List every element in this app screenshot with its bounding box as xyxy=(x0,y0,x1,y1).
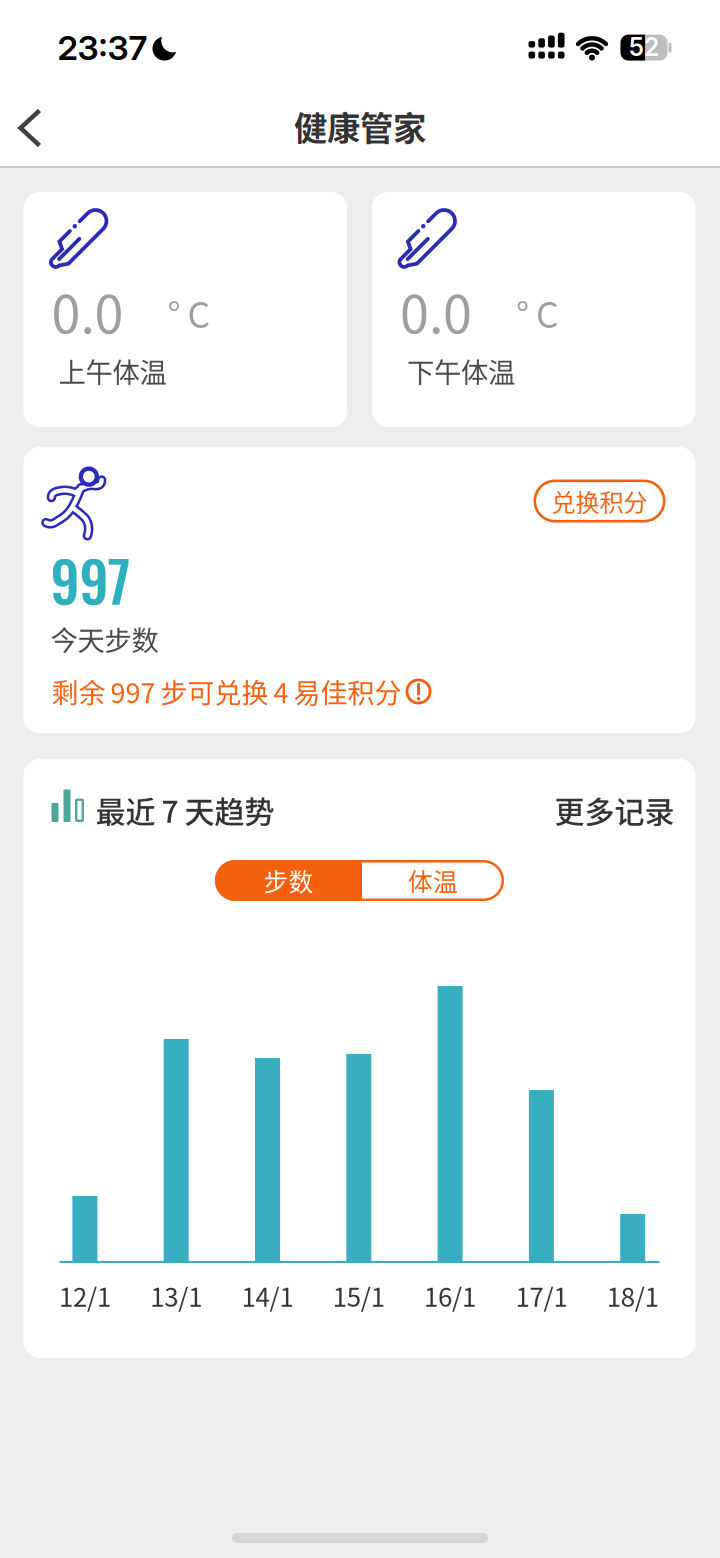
staticText: 23:37 xyxy=(57,27,147,68)
button[interactable]: Back xyxy=(0,96,59,159)
staticText: 52 xyxy=(629,32,659,62)
staticText: 最近 7 天趋势 xyxy=(95,788,274,831)
staticText: 18/1 xyxy=(607,1277,659,1314)
staticText: 今天步数 xyxy=(50,619,158,659)
staticText: 0.0 xyxy=(400,273,472,348)
staticText: 13/1 xyxy=(150,1277,202,1314)
button[interactable]: 更多记录 xyxy=(554,788,674,831)
staticText: 14/1 xyxy=(241,1277,293,1314)
staticText: 步数 xyxy=(263,863,313,898)
staticText: 下午体温 xyxy=(407,351,515,391)
staticText: 兑换积分 xyxy=(551,484,647,518)
staticText: 997 xyxy=(50,538,130,621)
button[interactable]: About points xyxy=(405,678,431,704)
button[interactable]: 步数 xyxy=(215,860,362,901)
staticText: 体温 xyxy=(408,863,458,898)
staticText: 15/1 xyxy=(333,1277,385,1314)
staticText: 0.0 xyxy=(51,273,123,348)
staticText: ° C xyxy=(516,287,559,338)
staticText: 16/1 xyxy=(424,1277,476,1314)
staticText: 剩余 997 步可兑换 4 易佳积分 xyxy=(51,672,401,711)
staticText: 上午体温 xyxy=(58,351,166,391)
button[interactable]: 兑换积分 xyxy=(533,479,665,522)
button[interactable]: 体温 xyxy=(362,860,504,901)
staticText: ° C xyxy=(167,287,210,338)
staticText: 17/1 xyxy=(515,1277,567,1314)
staticText: 健康管家 xyxy=(294,102,426,150)
staticText: 12/1 xyxy=(59,1277,111,1314)
staticText: 更多记录 xyxy=(554,788,674,831)
